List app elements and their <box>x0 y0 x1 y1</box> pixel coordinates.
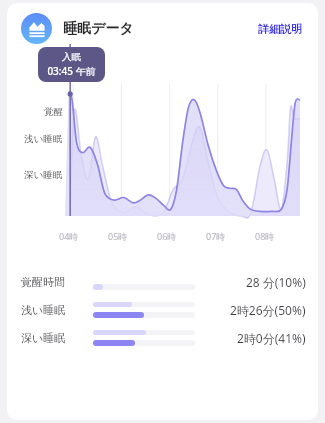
staticText: 2時26分(50%) <box>230 302 306 318</box>
staticText: 入眠 <box>62 51 81 63</box>
staticText: 2時0分(41%) <box>237 330 306 346</box>
staticText: 06時 <box>157 230 177 242</box>
staticText: 詳細説明 <box>258 22 302 36</box>
staticText: 08時 <box>255 230 275 242</box>
button[interactable]: 浅い睡眠 <box>7 296 318 324</box>
staticText: 深い睡眠 <box>24 169 63 181</box>
staticText: 浅い睡眠 <box>21 303 93 317</box>
button[interactable]: 覚醒時間 <box>7 268 318 296</box>
staticText: 05時 <box>108 230 128 242</box>
button[interactable]: 深い睡眠 <box>7 324 318 352</box>
other: 睡眠データ アイコン <box>21 13 52 44</box>
staticText: 覚醒時間 <box>21 275 93 289</box>
button[interactable]: 詳細説明 <box>256 19 304 39</box>
staticText: 浅い睡眠 <box>24 133 63 145</box>
staticText: 04時 <box>59 230 79 242</box>
staticText: 深い睡眠 <box>21 331 93 345</box>
staticText: 07時 <box>206 230 226 242</box>
button[interactable]: 入眠 <box>38 47 105 82</box>
staticText: 睡眠データ <box>63 20 134 38</box>
staticText: 03:45 午前 <box>47 64 96 78</box>
staticText: 覚醒 <box>44 106 63 118</box>
staticText: 28 分(10%) <box>246 274 306 290</box>
